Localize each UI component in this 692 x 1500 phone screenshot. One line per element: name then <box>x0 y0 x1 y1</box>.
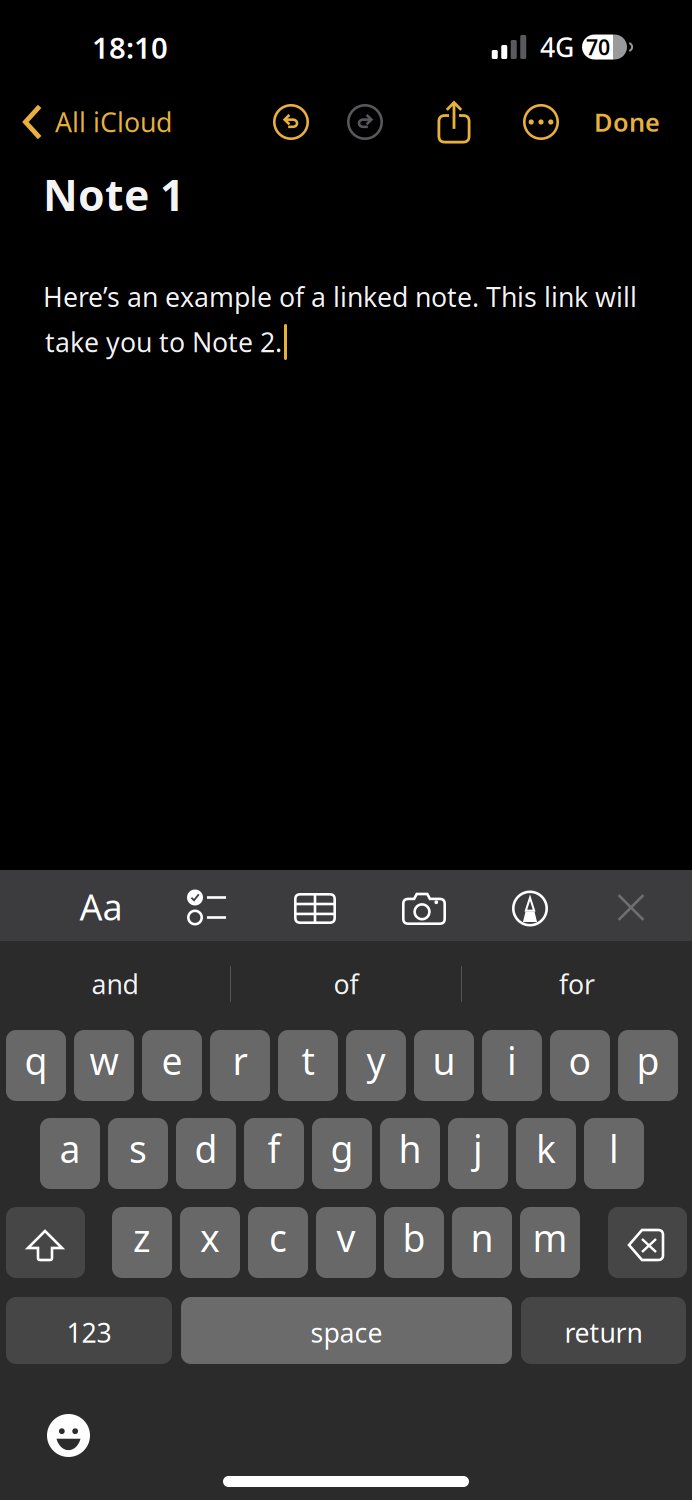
button[interactable]: Close <box>585 872 677 943</box>
button[interactable]: x <box>180 1207 240 1278</box>
button[interactable]: z <box>112 1207 172 1278</box>
button[interactable]: Share <box>426 94 482 150</box>
button[interactable]: Delete <box>608 1207 687 1278</box>
staticText: v <box>336 1213 355 1262</box>
button[interactable]: b <box>384 1207 444 1278</box>
staticText: and <box>91 966 138 1002</box>
button[interactable]: q <box>6 1030 66 1101</box>
staticText: Note 1 <box>43 166 184 223</box>
button[interactable]: Markup <box>484 873 576 944</box>
staticText: for <box>559 966 595 1002</box>
button[interactable]: m <box>520 1207 580 1278</box>
staticText: l <box>609 1124 619 1173</box>
button[interactable]: All iCloud <box>2 93 192 151</box>
staticText: p <box>636 1036 659 1085</box>
button[interactable]: e <box>142 1030 202 1101</box>
staticText: h <box>398 1124 421 1173</box>
button[interactable]: t <box>278 1030 338 1101</box>
button[interactable]: Checklist <box>161 872 253 943</box>
button[interactable]: s <box>108 1118 168 1189</box>
staticText: Here’s an example of a linked note. This… <box>43 279 637 314</box>
button[interactable]: 123 <box>6 1297 172 1364</box>
button[interactable]: y <box>346 1030 406 1101</box>
staticText: space <box>310 1315 382 1350</box>
button[interactable]: space <box>181 1297 512 1364</box>
staticText: x <box>200 1213 220 1262</box>
staticText: All iCloud <box>55 104 172 140</box>
staticText: 4G <box>540 29 574 65</box>
button[interactable]: and <box>0 941 230 1027</box>
button[interactable]: Undo <box>263 94 319 150</box>
button[interactable]: Shift <box>6 1207 85 1278</box>
button[interactable]: for <box>462 941 692 1027</box>
button[interactable]: u <box>414 1030 474 1101</box>
staticText: r <box>232 1036 247 1085</box>
staticText: Aa <box>79 883 122 930</box>
staticText: 123 <box>66 1315 111 1350</box>
staticText: s <box>129 1124 147 1173</box>
staticText: 18:10 <box>92 28 168 67</box>
staticText: o <box>568 1036 591 1085</box>
button[interactable]: Format <box>55 871 147 942</box>
button[interactable]: f <box>244 1118 304 1189</box>
staticText: y <box>366 1036 385 1085</box>
staticText: take you to Note 2. <box>45 324 282 360</box>
staticText: f <box>267 1124 280 1173</box>
button[interactable]: j <box>448 1118 508 1189</box>
button[interactable]: k <box>516 1118 576 1189</box>
staticText: 70 <box>586 33 610 61</box>
staticText: j <box>473 1124 483 1173</box>
button[interactable]: i <box>482 1030 542 1101</box>
button[interactable]: Redo <box>337 94 393 150</box>
button[interactable]: w <box>74 1030 134 1101</box>
button[interactable]: v <box>316 1207 376 1278</box>
staticText: t <box>301 1036 314 1085</box>
staticText: q <box>24 1036 47 1085</box>
staticText: u <box>432 1036 455 1085</box>
staticText: i <box>507 1036 517 1085</box>
staticText: g <box>330 1124 353 1173</box>
staticText: z <box>133 1213 151 1262</box>
staticText: k <box>536 1124 556 1173</box>
button[interactable]: Camera <box>378 873 470 944</box>
staticText: n <box>470 1213 493 1262</box>
button[interactable]: p <box>618 1030 678 1101</box>
button[interactable]: c <box>248 1207 308 1278</box>
button[interactable]: More <box>513 94 569 150</box>
button[interactable]: g <box>312 1118 372 1189</box>
button[interactable]: Emoji <box>47 1414 90 1457</box>
button[interactable]: a <box>40 1118 100 1189</box>
button[interactable]: return <box>521 1297 686 1364</box>
button[interactable]: r <box>210 1030 270 1101</box>
button[interactable]: Done <box>574 93 680 151</box>
staticText: Done <box>594 105 660 139</box>
staticText: c <box>269 1213 287 1262</box>
staticText: d <box>194 1124 217 1173</box>
staticText: b <box>402 1213 425 1262</box>
staticText: m <box>532 1213 567 1262</box>
staticText: of <box>333 966 358 1002</box>
staticText: w <box>89 1036 118 1085</box>
staticText: e <box>161 1036 182 1085</box>
button[interactable]: Table <box>269 873 361 944</box>
button[interactable]: h <box>380 1118 440 1189</box>
button[interactable]: d <box>176 1118 236 1189</box>
staticText: a <box>59 1124 80 1173</box>
button[interactable]: l <box>584 1118 644 1189</box>
button[interactable]: o <box>550 1030 610 1101</box>
staticText: return <box>564 1315 642 1350</box>
button[interactable]: of <box>231 941 461 1027</box>
button[interactable]: n <box>452 1207 512 1278</box>
